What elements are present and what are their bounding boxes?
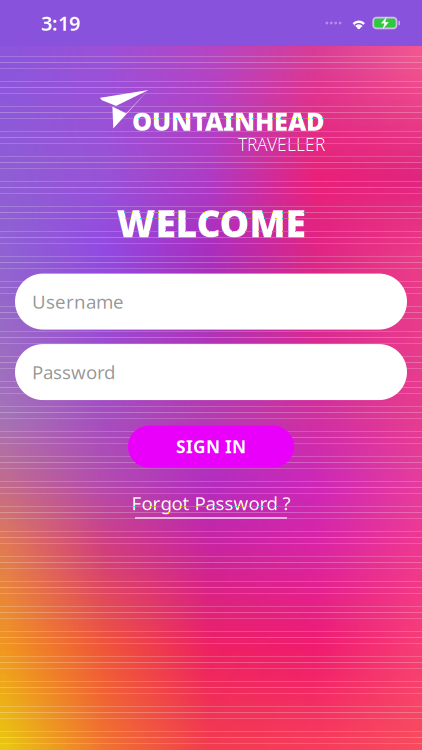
staticText: Username — [32, 289, 124, 314]
staticText: WELCOME — [116, 198, 305, 248]
button[interactable]: Password — [15, 344, 407, 400]
button[interactable]: Forgot Password ? — [131, 491, 290, 519]
staticText: TRAVELLER — [238, 133, 325, 156]
button[interactable]: Username — [15, 274, 407, 330]
staticText: SIGN IN — [176, 435, 246, 458]
staticText: Forgot Password ? — [131, 491, 290, 515]
staticText: Password — [32, 360, 115, 384]
staticText: 3:19 — [41, 10, 80, 36]
staticText: OUNTAINHEAD — [132, 104, 325, 138]
button[interactable]: SIGN IN — [128, 426, 294, 468]
